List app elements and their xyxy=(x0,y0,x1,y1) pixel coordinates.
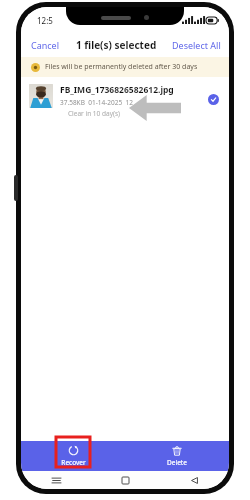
button[interactable]: Recents xyxy=(21,471,91,489)
staticText: Files will be permanently deleted after … xyxy=(45,62,198,72)
staticText: 1 file(s) selected xyxy=(76,38,157,52)
button[interactable]: FB_IMG_1736826582612.jpg xyxy=(21,77,229,125)
button[interactable]: Deselect All xyxy=(166,35,229,55)
button[interactable]: Back xyxy=(160,471,229,489)
staticText: Clear in 10 day(s) xyxy=(68,109,120,118)
button[interactable]: Recover xyxy=(21,441,125,471)
staticText: Recover xyxy=(61,458,86,467)
staticText: Deselect All xyxy=(172,39,221,51)
staticText: Cancel xyxy=(31,39,60,51)
staticText: 37.58KB 01-14-2025 12 xyxy=(60,98,133,107)
button[interactable]: Selected xyxy=(208,94,219,105)
staticText: FB_IMG_1736826582612.jpg xyxy=(60,84,174,96)
button[interactable]: Delete xyxy=(125,441,229,471)
button[interactable]: Cancel xyxy=(21,35,66,55)
button[interactable]: Home xyxy=(91,471,160,489)
staticText: 12:5 xyxy=(37,15,53,26)
staticText: Delete xyxy=(167,458,187,467)
